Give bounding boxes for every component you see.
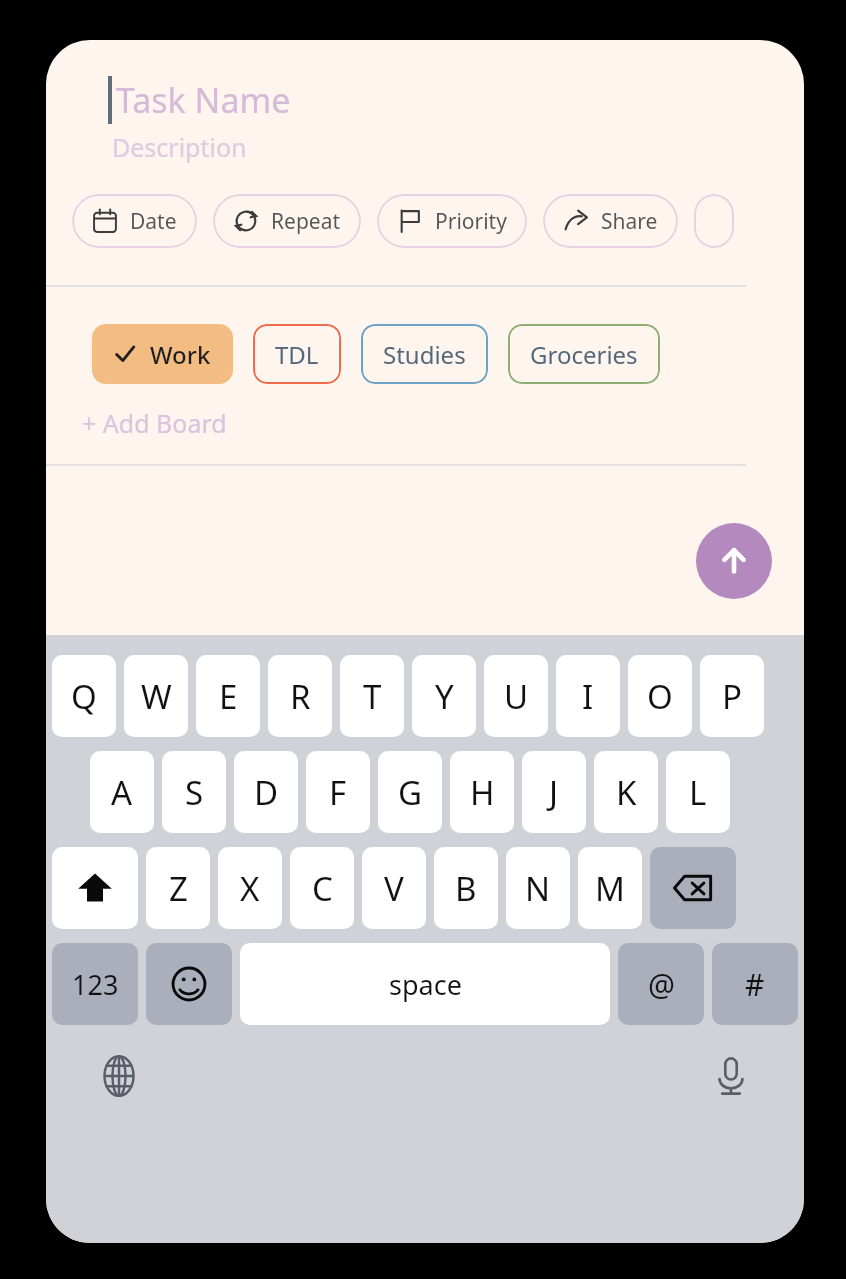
button[interactable]: J	[522, 751, 586, 833]
staticText: Groceries	[530, 338, 638, 371]
button[interactable]: W	[124, 655, 188, 737]
staticText: S	[185, 770, 204, 815]
button[interactable]: H	[450, 751, 514, 833]
staticText: TDL	[275, 338, 319, 371]
button[interactable]: Change language	[90, 1047, 148, 1105]
button[interactable]: D	[234, 751, 298, 833]
button[interactable]: space	[240, 943, 610, 1025]
staticText: Repeat	[271, 207, 341, 236]
staticText: Work	[150, 338, 211, 371]
staticText: K	[616, 770, 637, 815]
staticText: T	[363, 674, 382, 719]
button[interactable]: 123	[52, 943, 138, 1025]
button[interactable]: G	[378, 751, 442, 833]
staticText: B	[455, 866, 477, 911]
button[interactable]: P	[700, 655, 764, 737]
button[interactable]: A	[90, 751, 154, 833]
staticText: C	[312, 866, 333, 911]
staticText: V	[384, 866, 404, 911]
button[interactable]	[694, 194, 734, 248]
staticText: N	[525, 866, 551, 911]
button[interactable]: TDL	[253, 324, 341, 384]
button[interactable]: L	[666, 751, 730, 833]
button[interactable]: Y	[412, 655, 476, 737]
staticText: W	[141, 674, 172, 719]
button[interactable]: S	[162, 751, 226, 833]
button[interactable]: F	[306, 751, 370, 833]
button[interactable]: M	[578, 847, 642, 929]
staticText: E	[219, 674, 238, 719]
staticText: Date	[130, 207, 177, 236]
button[interactable]: I	[556, 655, 620, 737]
button[interactable]: Shift	[52, 847, 138, 929]
button[interactable]: Work	[92, 324, 233, 384]
button[interactable]: + Add Board	[82, 406, 227, 440]
button[interactable]: R	[268, 655, 332, 737]
button[interactable]: Z	[146, 847, 210, 929]
staticText: Studies	[383, 338, 466, 371]
staticText: U	[504, 674, 529, 719]
staticText: + Add Board	[82, 406, 227, 440]
button[interactable]: Submit task	[696, 523, 772, 599]
staticText: J	[549, 770, 559, 815]
button[interactable]: Emoji	[146, 943, 232, 1025]
button[interactable]: X	[218, 847, 282, 929]
button[interactable]: B	[434, 847, 498, 929]
staticText: 123	[72, 966, 119, 1003]
staticText: D	[254, 770, 279, 815]
button[interactable]: Groceries	[508, 324, 660, 384]
button[interactable]: Share	[543, 194, 678, 248]
button[interactable]: Repeat	[213, 194, 361, 248]
button[interactable]: C	[290, 847, 354, 929]
staticText: O	[647, 674, 673, 719]
staticText: Z	[169, 866, 188, 911]
button[interactable]: Voice input	[702, 1047, 760, 1105]
button[interactable]: N	[506, 847, 570, 929]
staticText: Share	[601, 207, 658, 236]
button[interactable]: @	[618, 943, 704, 1025]
button[interactable]: O	[628, 655, 692, 737]
button[interactable]: E	[196, 655, 260, 737]
button[interactable]: T	[340, 655, 404, 737]
staticText: space	[389, 966, 462, 1003]
staticText: Priority	[435, 207, 507, 236]
button[interactable]: Date	[72, 194, 197, 248]
button[interactable]: V	[362, 847, 426, 929]
staticText: L	[689, 770, 707, 815]
button[interactable]: Studies	[361, 324, 488, 384]
staticText: P	[722, 674, 742, 719]
staticText: A	[111, 770, 133, 815]
staticText: Y	[435, 674, 454, 719]
staticText: Task Name	[116, 77, 291, 123]
staticText: #	[745, 964, 765, 1005]
staticText: F	[329, 770, 347, 815]
button[interactable]: Q	[52, 655, 116, 737]
button[interactable]: K	[594, 751, 658, 833]
staticText: Q	[71, 674, 97, 719]
staticText: X	[240, 866, 260, 911]
staticText: H	[470, 770, 495, 815]
staticText: I	[582, 674, 594, 719]
button[interactable]: #	[712, 943, 798, 1025]
staticText: R	[290, 674, 311, 719]
staticText: @	[648, 964, 675, 1005]
button[interactable]: U	[484, 655, 548, 737]
staticText: G	[398, 770, 423, 815]
button[interactable]: Backspace	[650, 847, 736, 929]
staticText: Description	[112, 130, 247, 164]
button[interactable]: Priority	[377, 194, 527, 248]
staticText: M	[595, 866, 625, 911]
